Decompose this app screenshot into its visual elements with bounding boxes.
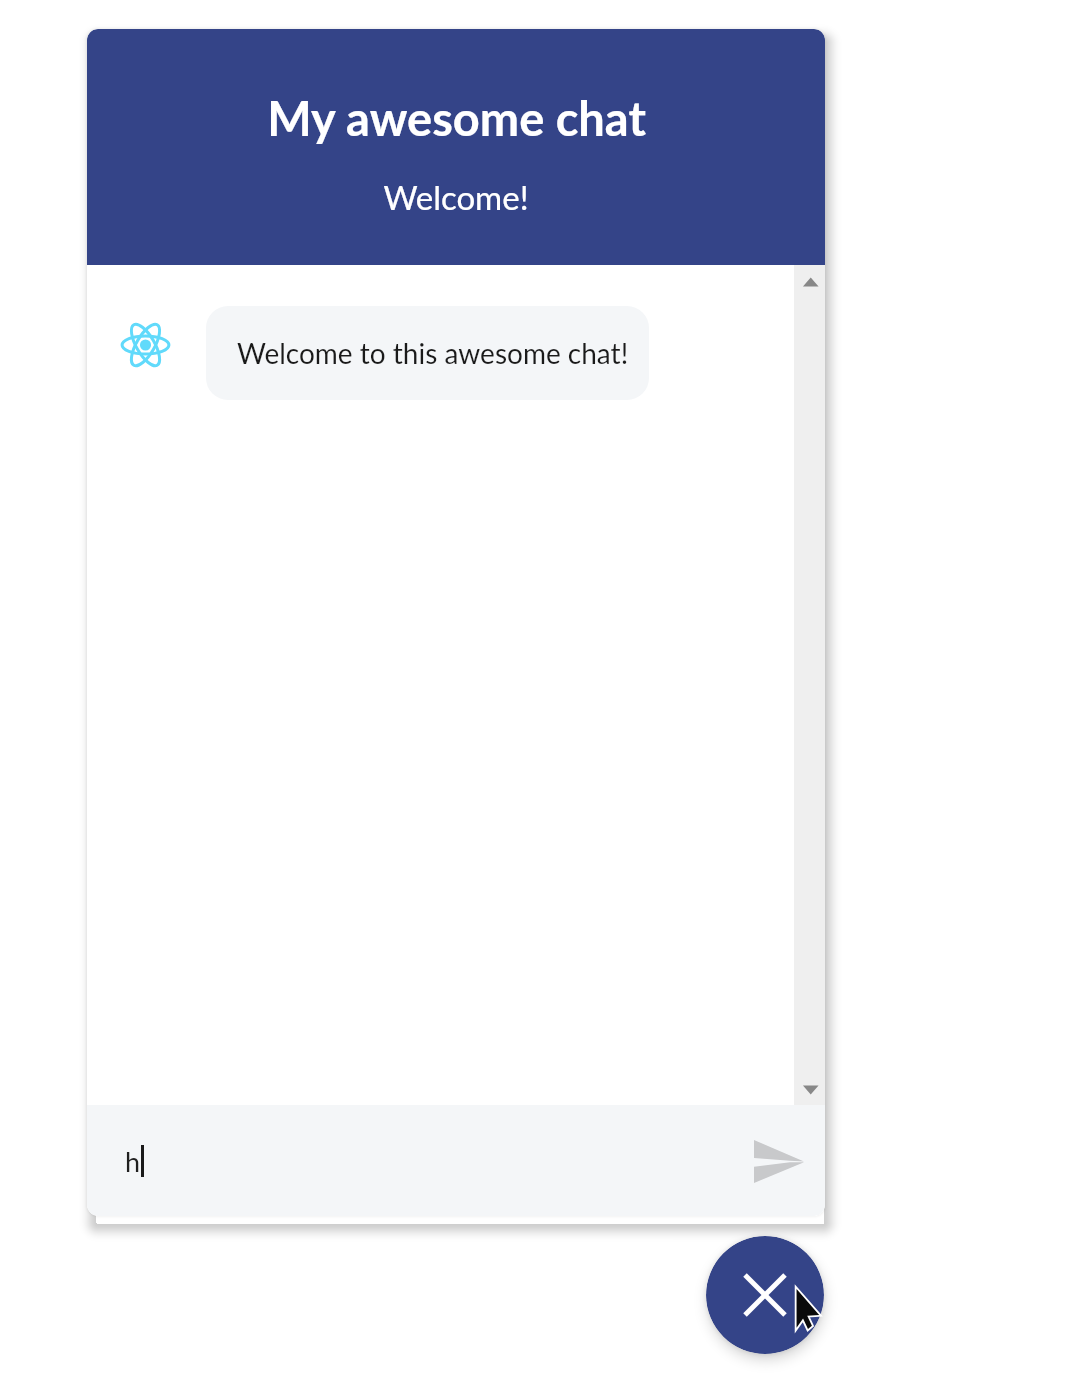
button[interactable]: Welcome to this awesome chat!	[206, 306, 649, 400]
staticText: h	[125, 1145, 141, 1177]
button[interactable]: Message input	[87, 1105, 736, 1216]
staticText: Welcome to this awesome chat!	[237, 336, 629, 370]
staticText: Welcome!	[383, 177, 529, 217]
staticText: My awesome chat	[267, 90, 646, 146]
button[interactable]: Send	[736, 1118, 822, 1204]
button[interactable]: Close chat	[706, 1236, 824, 1354]
